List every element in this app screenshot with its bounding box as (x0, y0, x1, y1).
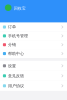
staticText: 用户协议 (8, 83, 24, 88)
staticText: 手机号管理 (8, 33, 28, 38)
staticText: 分销 (8, 42, 16, 47)
staticText: 订单 (8, 25, 16, 29)
button[interactable]: 意见反馈 (0, 71, 67, 81)
staticText: 设置 (8, 63, 16, 68)
staticText: 意见反馈 (8, 73, 24, 78)
button[interactable]: 用户协议 (0, 81, 67, 91)
button[interactable]: 设置 (0, 61, 67, 71)
button[interactable]: 帮助中心 (0, 49, 67, 58)
button[interactable]: 分销 (0, 40, 67, 49)
staticText: 帮助中心 (8, 51, 24, 56)
staticText: 回收宝 (14, 6, 26, 11)
button[interactable]: 手机号管理 (0, 31, 67, 40)
button[interactable]: 订单 (0, 23, 67, 31)
